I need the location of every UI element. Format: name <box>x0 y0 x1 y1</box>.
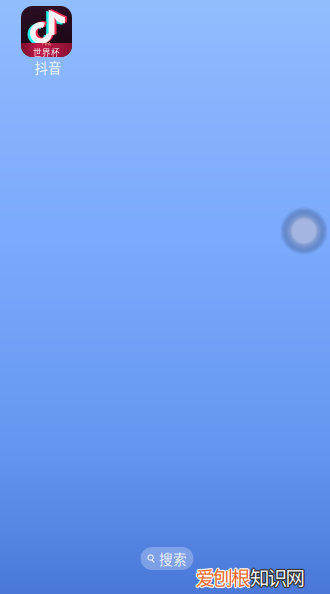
staticText: 知识网 <box>250 563 305 591</box>
button[interactable]: FIFA <box>13 0 79 74</box>
button[interactable]: AssistiveTouch <box>280 207 327 254</box>
staticText: 知识网 <box>250 564 305 592</box>
staticText: 爱刨根 <box>197 563 251 591</box>
staticText: 知识网 <box>249 562 304 590</box>
staticText: 知识网 <box>249 563 303 591</box>
staticText: 爱刨根 <box>195 564 250 592</box>
staticText: 抖音 <box>34 58 61 77</box>
staticText: 爱刨根 <box>195 562 249 590</box>
staticText: 知识网 <box>251 562 305 590</box>
staticText: 爱刨根 <box>195 563 250 591</box>
staticText: 搜索 <box>159 549 187 568</box>
staticText: 知识网 <box>251 564 305 592</box>
staticText: 知识网 <box>250 562 305 590</box>
button[interactable]: 搜索 <box>140 547 193 570</box>
staticText: 知识网 <box>249 564 304 592</box>
staticText: FIFA <box>42 41 51 47</box>
staticText: 爱刨根 <box>196 562 251 590</box>
staticText: 爱刨根 <box>196 564 251 592</box>
staticText: 爱刨根 <box>195 564 249 592</box>
staticText: 世界杯 <box>33 46 60 59</box>
staticText: 知识网 <box>251 563 306 591</box>
staticText: 爱刨根 <box>194 563 249 591</box>
staticText: 爱刨根 <box>195 562 250 590</box>
